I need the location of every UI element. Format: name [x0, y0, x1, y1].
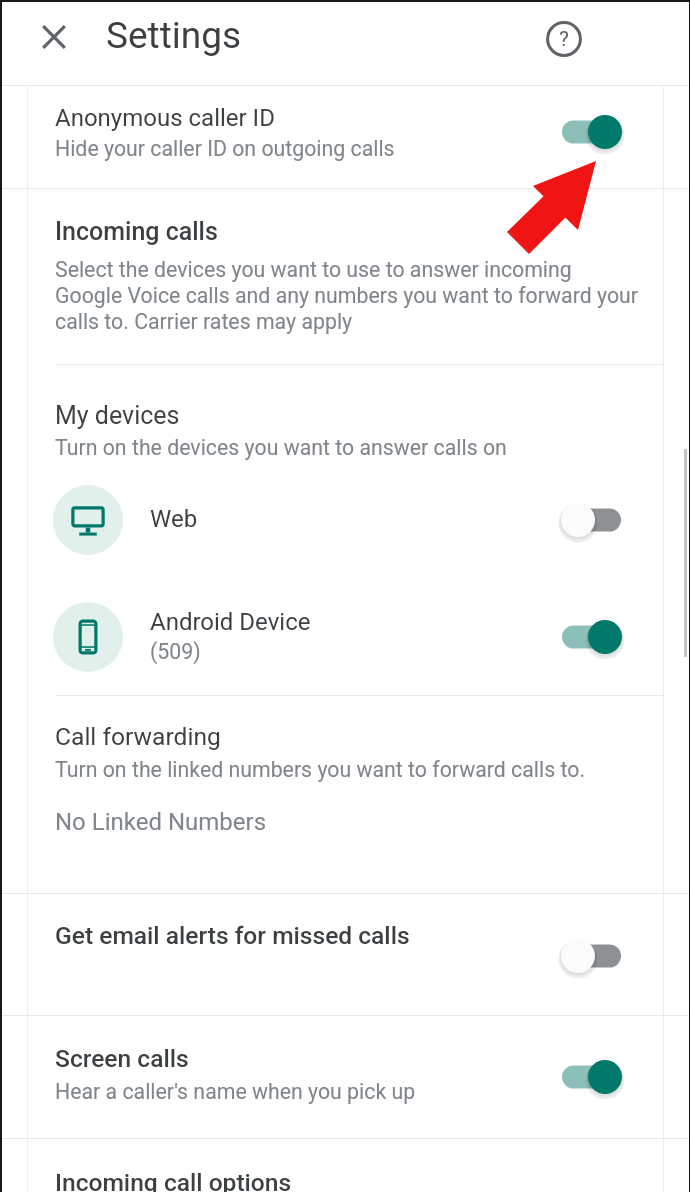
- staticText: My devices: [55, 399, 180, 430]
- button[interactable]: Switch on: [561, 1051, 622, 1103]
- button[interactable]: Web: [28, 461, 663, 579]
- staticText: Android Device: [150, 606, 311, 636]
- button[interactable]: Get email alerts for missed calls: [28, 894, 663, 1015]
- staticText: Turn on the linked numbers you want to f…: [55, 756, 585, 783]
- staticText: Incoming calls: [55, 215, 218, 246]
- staticText: Turn on the devices you want to answer c…: [55, 434, 507, 461]
- staticText: (509): [150, 638, 201, 665]
- staticText: ?: [559, 25, 569, 51]
- staticText: Screen calls: [55, 1043, 189, 1074]
- button[interactable]: Switch on: [561, 106, 622, 158]
- staticText: Hear a caller's name when you pick up: [55, 1078, 416, 1105]
- staticText: Get email alerts for missed calls: [55, 920, 410, 951]
- staticText: Web: [150, 503, 198, 533]
- button[interactable]: Switch on: [561, 611, 622, 663]
- button[interactable]: Switch off: [561, 930, 622, 982]
- staticText: Anonymous caller ID: [55, 102, 275, 132]
- button[interactable]: Help: [540, 15, 588, 63]
- staticText: Incoming call options: [55, 1167, 292, 1192]
- button[interactable]: Close: [26, 9, 82, 65]
- staticText: Select the devices you want to use to an…: [55, 256, 640, 334]
- staticText: Settings: [106, 11, 242, 57]
- button[interactable]: Screen calls: [28, 1016, 663, 1138]
- button[interactable]: Anonymous caller ID: [28, 86, 663, 188]
- button[interactable]: Android Device: [28, 579, 663, 695]
- button[interactable]: Switch off: [561, 494, 622, 546]
- staticText: Call forwarding: [55, 721, 221, 752]
- staticText: Hide your caller ID on outgoing calls: [55, 135, 395, 162]
- staticText: No Linked Numbers: [55, 806, 267, 836]
